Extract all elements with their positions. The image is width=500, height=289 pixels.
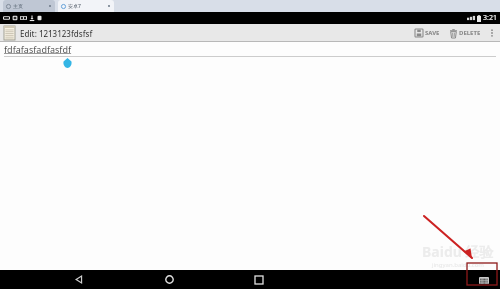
staticText: 主页 xyxy=(13,3,23,9)
staticText: 3:21 xyxy=(483,13,497,23)
button[interactable]: 主页 xyxy=(3,0,55,12)
button[interactable]: 安卓7 xyxy=(58,0,114,12)
staticText: Baidu 经验 xyxy=(422,242,494,261)
button[interactable]: Recent apps xyxy=(248,270,270,289)
staticText: DELETE xyxy=(459,29,481,37)
button[interactable]: Home xyxy=(158,270,180,289)
button[interactable]: Switch keyboard xyxy=(477,274,491,286)
staticText: SAVE xyxy=(425,29,440,37)
button[interactable]: More options xyxy=(487,24,497,42)
staticText: fdfafasfadfasfdf xyxy=(4,43,72,55)
button[interactable]: DELETE xyxy=(447,24,484,42)
staticText: Edit: 1213123fdsfsf xyxy=(20,28,93,39)
button[interactable]: Back xyxy=(68,270,90,289)
staticText: jingyan.baidu.com xyxy=(432,261,484,269)
button[interactable]: SAVE xyxy=(412,24,443,42)
staticText: 安卓7 xyxy=(68,3,81,10)
